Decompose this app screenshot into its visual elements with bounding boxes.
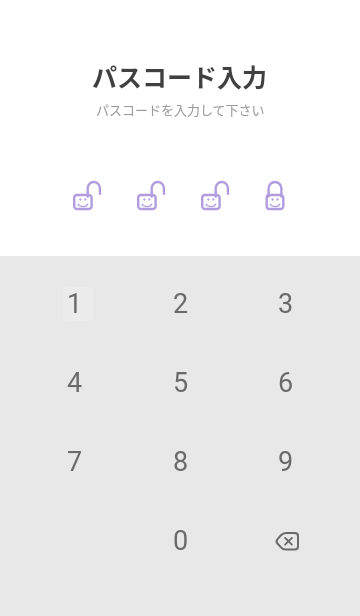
staticText: 4 [67, 367, 83, 399]
button[interactable]: 6 [233, 343, 338, 422]
staticText: 7 [67, 446, 83, 478]
button[interactable]: 9 [233, 422, 338, 501]
staticText: 8 [173, 446, 189, 478]
button[interactable]: 8 [128, 422, 233, 501]
staticText: 2 [173, 288, 189, 320]
button[interactable]: 1 [22, 264, 128, 343]
staticText: 9 [278, 446, 294, 478]
staticText: 6 [278, 367, 294, 399]
button[interactable]: 3 [233, 264, 338, 343]
staticText: 1 [67, 288, 83, 320]
staticText: パスコードを入力して下さい [96, 100, 265, 119]
button[interactable]: 4 [22, 343, 128, 422]
button[interactable]: 5 [128, 343, 233, 422]
staticText: 5 [173, 367, 189, 399]
button[interactable]: 0 [128, 501, 233, 580]
button[interactable]: 7 [22, 422, 128, 501]
button[interactable] [233, 501, 338, 580]
staticText: 3 [278, 288, 294, 320]
staticText: パスコード入力 [92, 58, 268, 94]
button[interactable]: 2 [128, 264, 233, 343]
staticText: 0 [173, 525, 189, 557]
